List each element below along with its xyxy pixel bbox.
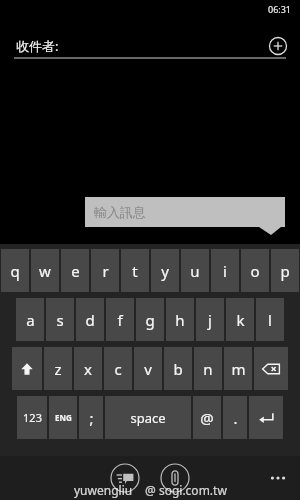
staticText: p	[280, 261, 290, 281]
staticText: i	[223, 261, 227, 281]
button[interactable]: 收件者:	[0, 32, 300, 60]
staticText: j	[208, 310, 212, 330]
button[interactable]: o	[241, 249, 269, 292]
button[interactable]: u	[181, 249, 209, 292]
staticText: @	[200, 408, 214, 428]
staticText: s	[56, 310, 64, 330]
button[interactable]: e	[61, 249, 89, 292]
staticText: @ sogi.com.tw	[145, 482, 227, 498]
button[interactable]: r	[91, 249, 119, 292]
staticText: r	[102, 261, 109, 281]
staticText: 收件者:	[16, 37, 59, 55]
button[interactable]: Add recipient	[268, 36, 288, 56]
staticText: yuwengliu	[74, 482, 133, 498]
button[interactable]: i	[211, 249, 239, 292]
staticText: ;	[89, 408, 94, 428]
staticText: z	[54, 359, 62, 379]
staticText: q	[10, 261, 20, 281]
button[interactable]: f	[106, 298, 134, 341]
button[interactable]: Backspace	[254, 347, 288, 390]
button[interactable]: n	[194, 347, 222, 390]
staticText: y	[161, 261, 169, 281]
button[interactable]: h	[166, 298, 194, 341]
button[interactable]: a	[16, 298, 44, 341]
staticText: space	[130, 409, 166, 427]
button[interactable]: Attach	[159, 462, 191, 494]
button[interactable]: t	[121, 249, 149, 292]
button[interactable]: l	[256, 298, 284, 341]
button[interactable]: z	[44, 347, 72, 390]
button[interactable]: 123	[17, 396, 47, 439]
staticText: b	[173, 359, 183, 379]
button[interactable]: b	[164, 347, 192, 390]
staticText: .	[233, 408, 238, 428]
staticText: x	[84, 359, 92, 379]
staticText: f	[117, 310, 123, 330]
button[interactable]: j	[196, 298, 224, 341]
staticText: h	[175, 310, 185, 330]
staticText: m	[231, 359, 246, 379]
button[interactable]: x	[74, 347, 102, 390]
staticText: e	[71, 261, 80, 281]
staticText: w	[39, 261, 51, 281]
button[interactable]: space	[105, 396, 191, 439]
staticText: o	[250, 261, 260, 281]
staticText: a	[26, 310, 35, 330]
staticText: v	[144, 359, 152, 379]
staticText: g	[145, 310, 155, 330]
button[interactable]: @	[193, 396, 221, 439]
staticText: k	[236, 310, 245, 330]
staticText: 06:31	[268, 3, 292, 15]
button[interactable]: q	[1, 249, 29, 292]
staticText: 123	[23, 410, 42, 425]
staticText: t	[132, 261, 138, 281]
staticText: 輸入訊息	[94, 204, 146, 220]
button[interactable]: .	[223, 396, 247, 439]
button[interactable]: v	[134, 347, 162, 390]
button[interactable]: d	[76, 298, 104, 341]
staticText: n	[203, 359, 213, 379]
button[interactable]: k	[226, 298, 254, 341]
button[interactable]: s	[46, 298, 74, 341]
staticText: c	[114, 359, 122, 379]
button[interactable]: ENG	[49, 396, 77, 439]
button[interactable]: w	[31, 249, 59, 292]
staticText: d	[85, 310, 95, 330]
button[interactable]: More options	[266, 468, 290, 488]
button[interactable]: Enter	[249, 396, 283, 439]
button[interactable]: ;	[79, 396, 103, 439]
button[interactable]: Shift	[12, 347, 42, 390]
staticText: ENG	[55, 412, 72, 423]
button[interactable]: p	[271, 249, 299, 292]
button[interactable]: Send message	[109, 462, 141, 494]
button[interactable]: y	[151, 249, 179, 292]
button[interactable]: g	[136, 298, 164, 341]
button[interactable]: m	[224, 347, 252, 390]
button[interactable]: c	[104, 347, 132, 390]
staticText: u	[190, 261, 200, 281]
staticText: l	[268, 310, 272, 330]
